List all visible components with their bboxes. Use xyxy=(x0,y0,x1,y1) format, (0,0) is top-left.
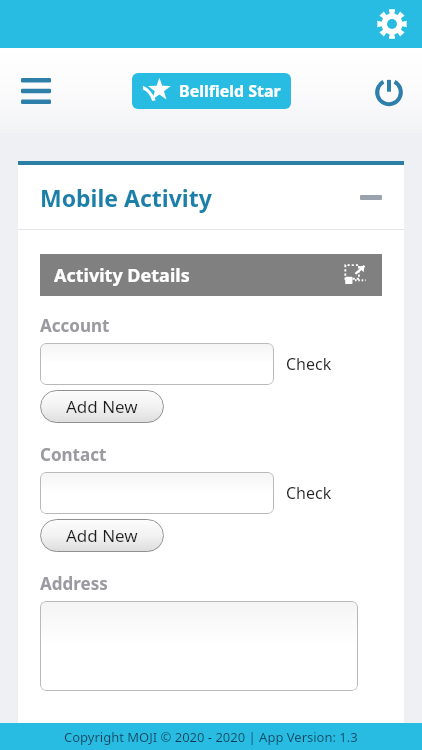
staticText: Address xyxy=(40,572,108,595)
staticText: Bellfield Star xyxy=(179,80,281,102)
staticText: Account xyxy=(40,314,110,337)
staticText: Contact xyxy=(40,443,107,466)
staticText: Check xyxy=(286,482,332,504)
staticText: Copyright MOJI © 2020 - 2020 | App Versi… xyxy=(64,728,358,746)
staticText: Add New xyxy=(66,395,138,418)
button[interactable]: Menu xyxy=(10,65,62,117)
staticText: Activity Details xyxy=(54,263,190,288)
button[interactable] xyxy=(40,601,358,691)
other: Expand xyxy=(342,262,368,288)
staticText: Check xyxy=(286,353,332,375)
button[interactable]: Settings xyxy=(370,2,414,46)
button[interactable]: Activity Details xyxy=(40,254,382,296)
button[interactable] xyxy=(40,472,274,514)
button[interactable]: Power / Logout xyxy=(364,66,414,116)
button[interactable]: Add New xyxy=(40,390,164,423)
button[interactable]: Bellfield Star xyxy=(132,73,291,109)
staticText: Mobile Activity xyxy=(40,182,212,213)
button[interactable]: Mobile Activity xyxy=(18,165,404,229)
staticText: Add New xyxy=(66,524,138,547)
button[interactable]: Add New xyxy=(40,519,164,552)
button[interactable] xyxy=(40,343,274,385)
